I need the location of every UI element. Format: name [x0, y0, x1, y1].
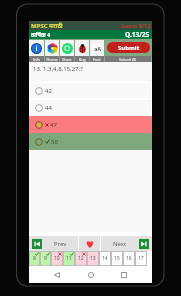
staticText: 14 — [102, 255, 108, 262]
staticText: Share — [62, 57, 72, 62]
button[interactable]: 8 — [29, 251, 40, 266]
button[interactable]: 11 — [63, 251, 75, 266]
staticText: Prev — [54, 240, 67, 248]
button[interactable]: Prev — [29, 236, 78, 251]
staticText: 50 — [51, 138, 58, 146]
staticText: Info — [33, 57, 40, 62]
staticText: 9 — [44, 255, 47, 262]
button[interactable]: 16 — [123, 251, 135, 266]
button[interactable]: 15 — [111, 251, 123, 266]
button[interactable]: Favourite — [79, 236, 100, 251]
staticText: 13. 1,3,4,8,15,27,? — [33, 65, 83, 73]
button[interactable]: Home — [85, 269, 97, 281]
staticText: aA — [94, 45, 102, 52]
button[interactable]: 13 — [87, 251, 99, 266]
button[interactable]: Info — [29, 40, 44, 56]
staticText: Q.13/25 — [125, 30, 150, 39]
button[interactable]: 47 — [29, 116, 152, 133]
staticText: MPSC मराठी — [31, 22, 63, 30]
staticText: 10 — [54, 255, 60, 262]
staticText: Submit All — [119, 57, 137, 62]
button[interactable]: Theme — [45, 40, 59, 56]
staticText: 12 — [78, 255, 84, 262]
staticText: 44 — [45, 104, 52, 112]
staticText: 17 — [138, 255, 144, 262]
staticText: 47 — [50, 121, 57, 129]
button[interactable]: Share — [60, 40, 74, 56]
staticText: 16 — [126, 255, 132, 262]
staticText: Theme — [46, 57, 58, 62]
button[interactable]: 10 — [51, 251, 63, 266]
staticText: Next — [113, 240, 127, 248]
button[interactable]: Font — [90, 40, 104, 56]
button[interactable]: 44 — [29, 99, 152, 116]
staticText: Font — [93, 57, 101, 62]
staticText: Score: 9/12 — [121, 22, 151, 29]
button[interactable]: Recents — [118, 269, 130, 281]
button[interactable]: 17 — [135, 251, 147, 266]
button[interactable]: 14 — [99, 251, 111, 266]
staticText: वार्षिक 4 — [31, 31, 51, 38]
button[interactable]: Submit — [107, 42, 150, 53]
staticText: 42 — [45, 87, 52, 95]
staticText: Submit — [118, 44, 140, 52]
staticText: 11 — [66, 255, 72, 262]
staticText: 13 — [90, 255, 96, 262]
button[interactable]: 9 — [40, 251, 51, 266]
staticText: 8 — [33, 255, 36, 262]
button[interactable]: Next — [101, 236, 152, 251]
button[interactable]: 12 — [75, 251, 87, 266]
button[interactable]: 50 — [29, 133, 152, 150]
button[interactable]: Back — [51, 269, 63, 281]
staticText: Bug — [79, 57, 86, 62]
staticText: 15 — [114, 255, 120, 262]
button[interactable]: 42 — [29, 82, 152, 99]
button[interactable]: Bug — [75, 40, 89, 56]
